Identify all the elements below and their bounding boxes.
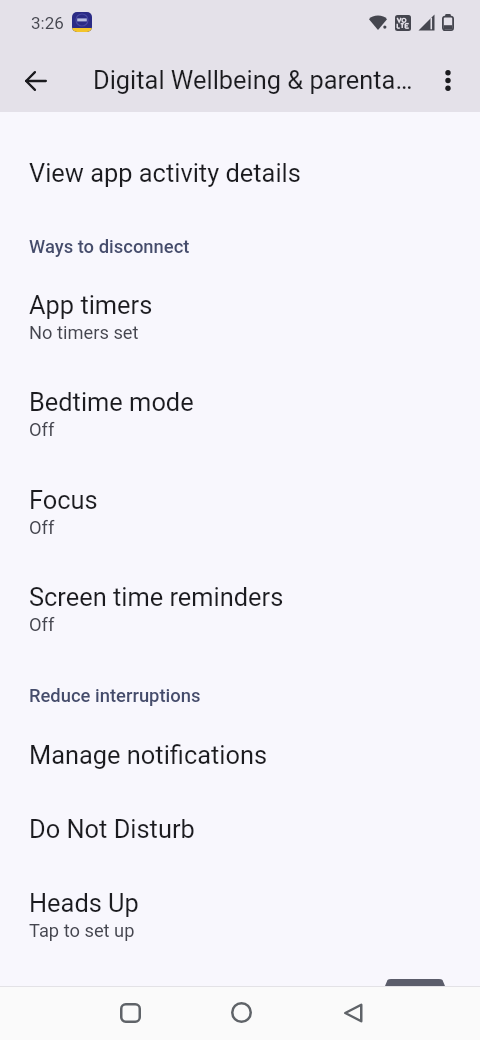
staticText: Reduce interruptions	[29, 685, 201, 707]
staticText: Focus	[29, 485, 98, 515]
staticText: No timers set	[29, 322, 139, 343]
button[interactable]: Recents	[100, 986, 161, 1039]
button[interactable]: Back	[322, 986, 383, 1039]
staticText: 3:26	[31, 13, 64, 33]
staticText: Do Not Disturb	[29, 814, 195, 844]
button[interactable]: Focus	[0, 472, 480, 555]
staticText: Off	[29, 419, 55, 440]
button[interactable]: View app activity details	[0, 145, 480, 215]
staticText: Heads Up	[29, 888, 139, 918]
staticText: View app activity details	[29, 158, 301, 188]
button[interactable]: Heads Up	[0, 875, 480, 958]
staticText: Off	[29, 614, 55, 635]
button[interactable]: Do Not Disturb	[0, 801, 480, 874]
staticText: Off	[29, 517, 55, 538]
button[interactable]: Back	[12, 57, 60, 105]
button[interactable]: Screen time reminders	[0, 569, 480, 652]
staticText: Tap to set up	[29, 920, 135, 941]
staticText: Screen time reminders	[29, 582, 284, 612]
staticText: Ways to disconnect	[29, 236, 190, 258]
button[interactable]: Manage notifications	[0, 727, 480, 800]
staticText: Bedtime mode	[29, 387, 194, 417]
staticText: Digital Wellbeing & parenta…	[93, 65, 413, 95]
button[interactable]: Home	[211, 986, 272, 1039]
staticText: App timers	[29, 290, 153, 320]
button[interactable]: App timers	[0, 277, 480, 360]
button[interactable]: More options	[424, 56, 472, 104]
button[interactable]: Bedtime mode	[0, 374, 480, 457]
staticText: Manage notifications	[29, 740, 268, 770]
